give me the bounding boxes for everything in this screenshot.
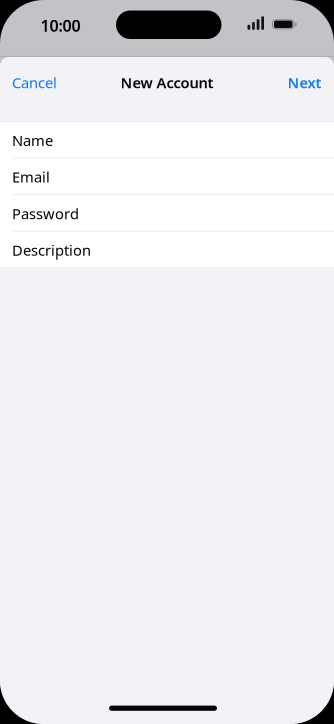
staticText: Email bbox=[12, 167, 50, 187]
staticText: 10:00 bbox=[40, 15, 80, 36]
staticText: New Account bbox=[120, 73, 213, 92]
button[interactable]: Name bbox=[0, 122, 334, 159]
staticText: Password bbox=[12, 204, 79, 223]
staticText: Cancel bbox=[12, 73, 57, 92]
staticText: Next bbox=[287, 73, 321, 92]
staticText: Description bbox=[12, 240, 91, 260]
button[interactable]: Password bbox=[0, 195, 334, 232]
staticText: Name bbox=[12, 131, 53, 150]
button[interactable]: Email bbox=[0, 159, 334, 195]
button[interactable]: Next bbox=[287, 73, 334, 92]
button[interactable]: Cancel bbox=[0, 73, 57, 92]
button[interactable]: Description bbox=[0, 232, 334, 268]
